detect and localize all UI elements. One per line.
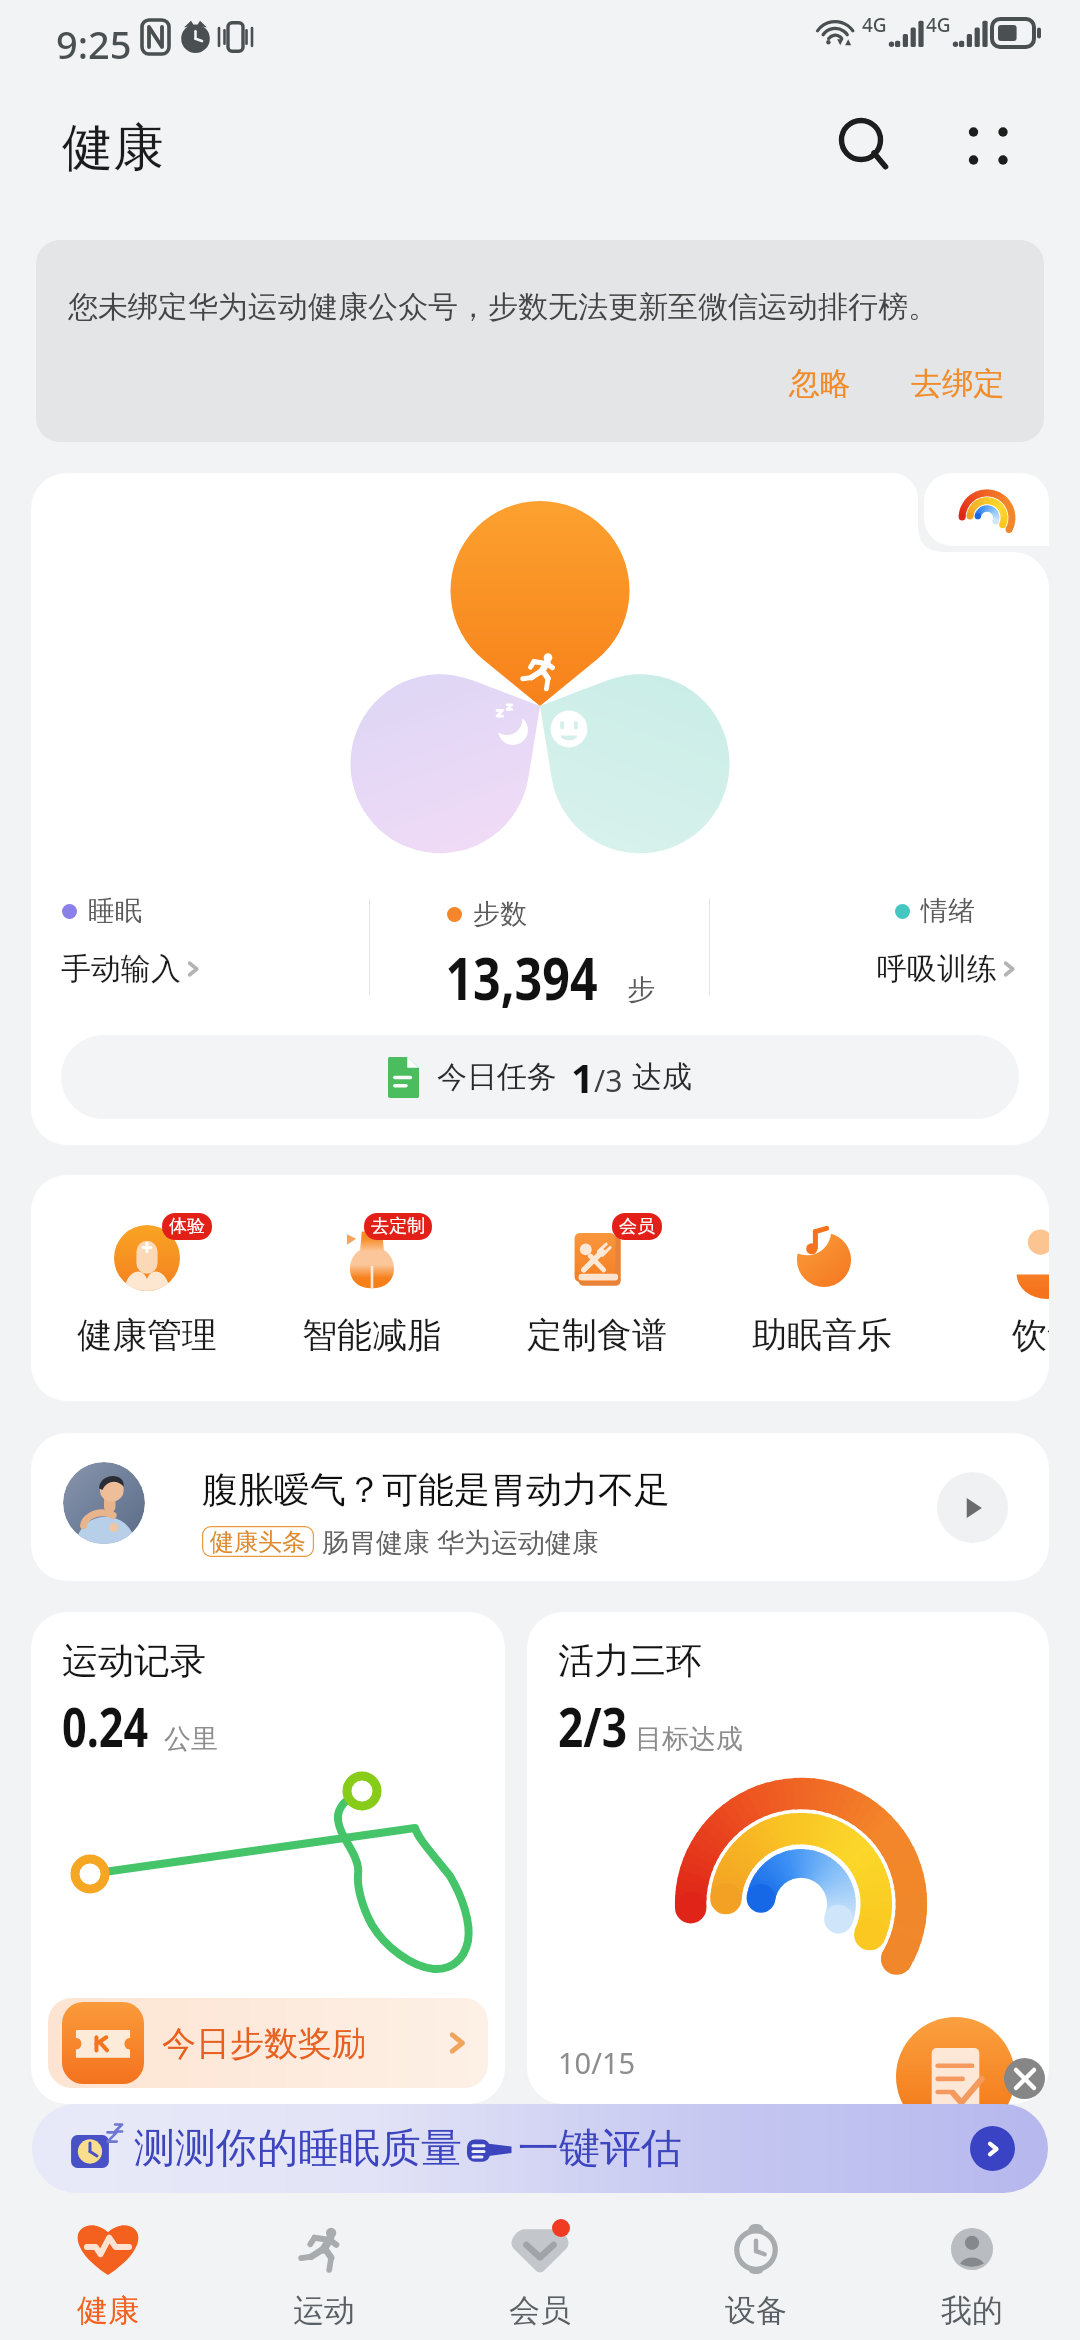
staticText: 去绑定	[911, 364, 1004, 403]
staticText: 去定制	[371, 1215, 425, 1238]
button[interactable]: 运动记录	[31, 1612, 505, 2104]
button[interactable]: Search	[829, 98, 901, 170]
staticText: 活力三环	[558, 1638, 702, 1683]
staticText: 设备	[725, 2291, 787, 2330]
button[interactable]: Three rings	[924, 473, 1049, 546]
staticText: 会员	[509, 2291, 571, 2330]
button[interactable]: 体验	[34, 1175, 259, 1401]
staticText: 公里	[164, 1722, 218, 1756]
button[interactable]: 情绪	[710, 881, 1049, 1021]
button[interactable]: 设备	[648, 2200, 864, 2340]
staticText: 13,394	[445, 937, 598, 1017]
staticText: 1	[571, 1050, 594, 1104]
staticText: 一键评估	[518, 2123, 682, 2175]
staticText: 目标达成	[635, 1722, 743, 1756]
button[interactable]: 今日步数奖励	[48, 1998, 488, 2088]
staticText: 步	[627, 972, 655, 1007]
staticText: 忽略	[789, 364, 851, 403]
staticText: 达成	[632, 1058, 692, 1096]
staticText: 手动输入	[61, 950, 181, 988]
staticText: 肠胃健康 华为运动健康	[322, 1523, 600, 1560]
button[interactable]: Open sleep assessment	[970, 2126, 1015, 2171]
button[interactable]: Play	[937, 1472, 1008, 1543]
button[interactable]: 活力三环	[527, 1612, 1049, 2104]
staticText: 4G	[926, 12, 951, 38]
staticText: 健康管理	[77, 1313, 217, 1357]
staticText: 测测你的睡眠质量	[134, 2123, 462, 2175]
button[interactable]: 腹胀嗳气？可能是胃动力不足	[31, 1433, 1049, 1581]
staticText: 您未绑定华为运动健康公众号，步数无法更新至微信运动排行榜。	[68, 288, 938, 326]
staticText: 我的	[941, 2291, 1003, 2330]
staticText: 睡眠	[88, 894, 142, 928]
button[interactable]: Close	[1004, 2058, 1045, 2099]
button[interactable]: 去定制	[259, 1175, 484, 1401]
staticText: 今日任务	[437, 1058, 557, 1096]
staticText: 健康头条	[210, 1527, 306, 1557]
staticText: 健康	[77, 2291, 139, 2330]
staticText: 步数	[473, 897, 527, 931]
button[interactable]: 运动	[216, 2200, 432, 2340]
staticText: 10/15	[558, 2043, 636, 2082]
staticText: 体验	[169, 1215, 205, 1238]
staticText: 4G	[862, 12, 887, 38]
button[interactable]: 饮食	[934, 1175, 1049, 1401]
button[interactable]: 我的	[864, 2200, 1080, 2340]
button[interactable]: 测测你的睡眠质量	[32, 2104, 1048, 2193]
button[interactable]: 助眠音乐	[709, 1175, 934, 1401]
staticText: 腹胀嗳气？可能是胃动力不足	[202, 1467, 670, 1512]
staticText: 智能减脂	[302, 1313, 442, 1357]
staticText: 健康	[62, 116, 164, 180]
button[interactable]: More options	[949, 108, 1027, 172]
staticText: 今日步数奖励	[162, 2022, 366, 2065]
staticText: /3	[594, 1060, 623, 1101]
staticText: 0.24	[62, 1689, 148, 1763]
staticText: 呼吸训练	[877, 950, 997, 988]
button[interactable]: 去绑定	[903, 364, 1012, 403]
button[interactable]: 睡眠	[31, 881, 369, 1021]
staticText: 2/3	[558, 1689, 628, 1763]
staticText: 会员	[619, 1215, 655, 1238]
button[interactable]: 步数	[370, 881, 709, 1021]
button[interactable]: 健康	[0, 2200, 216, 2340]
staticText: 饮食	[1012, 1313, 1049, 1357]
staticText: 情绪	[921, 894, 975, 928]
staticText: 运动记录	[62, 1638, 206, 1683]
staticText: 9:25	[56, 18, 132, 70]
button[interactable]: 今日任务	[61, 1035, 1019, 1119]
button[interactable]: 忽略	[781, 364, 859, 403]
staticText: 运动	[293, 2291, 355, 2330]
staticText: 定制食谱	[527, 1313, 667, 1357]
button[interactable]: 会员	[484, 1175, 709, 1401]
staticText: 助眠音乐	[752, 1313, 892, 1357]
button[interactable]: 会员	[432, 2200, 648, 2340]
